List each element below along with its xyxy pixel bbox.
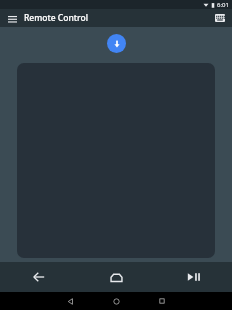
button[interactable]: Home [78, 262, 155, 292]
button[interactable]: Play or pause [155, 262, 232, 292]
button[interactable]: Scroll down [107, 34, 126, 53]
staticText: Remote Control [24, 12, 88, 24]
button[interactable]: Open navigation menu [5, 11, 19, 25]
button[interactable]: Home [93, 292, 139, 310]
button[interactable]: Back [0, 262, 78, 292]
button[interactable]: Recent apps [139, 292, 185, 310]
button[interactable]: Back [47, 292, 93, 310]
staticText: 6:01 [217, 1, 229, 9]
button[interactable]: Show keyboard [213, 11, 227, 25]
